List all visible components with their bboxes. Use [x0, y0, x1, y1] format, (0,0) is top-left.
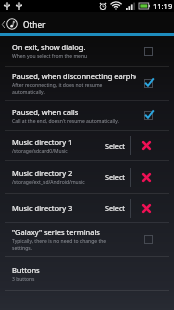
staticText: Select [105, 172, 125, 182]
staticText: Paused, when calls [12, 107, 79, 117]
staticText: automatically. [12, 89, 45, 96]
staticText: Music directory 2 [12, 168, 73, 178]
button[interactable]: Select [100, 131, 130, 160]
staticText: Paused, when disconnecting earphone [12, 71, 136, 81]
button[interactable]: Music directory 1 [0, 131, 100, 160]
staticText: On exit, show dialog. [12, 42, 86, 52]
button[interactable]: Music directory 2 [0, 161, 100, 193]
button[interactable]: Select [100, 161, 130, 193]
staticText: Other [23, 19, 46, 30]
staticText: 11:19 [153, 1, 173, 11]
button[interactable]: "Galaxy" series terminals [0, 223, 174, 256]
button[interactable]: Select [100, 194, 130, 222]
button[interactable]: Paused, when calls [0, 101, 174, 130]
staticText: After reconnecting, it does not resume [12, 82, 103, 89]
button[interactable]: Delete directory [131, 161, 162, 193]
button[interactable]: Music directory 3 [0, 194, 100, 222]
staticText: Typically, there is no need to change th… [12, 238, 107, 245]
staticText: Call at the end, doesn't resume automati… [12, 118, 119, 125]
staticText: settings. [12, 245, 33, 252]
button[interactable]: Delete directory [131, 194, 162, 222]
button[interactable]: Navigate up [0, 15, 18, 33]
staticText: "Galaxy" series terminals [12, 227, 100, 237]
staticText: Select [105, 141, 125, 151]
staticText: /storage/sdcard0/Music [12, 148, 68, 155]
button[interactable]: Paused, when disconnecting earphone [0, 67, 174, 100]
staticText: Music directory 3 [12, 203, 73, 213]
staticText: When you select from the menu [12, 53, 88, 60]
staticText: Buttons [12, 265, 40, 275]
staticText: Select [105, 203, 125, 213]
button[interactable]: Delete directory [131, 131, 162, 160]
button[interactable]: Buttons [0, 257, 174, 290]
button[interactable]: On exit, show dialog. [0, 36, 174, 66]
staticText: 3 buttons [12, 276, 35, 283]
staticText: /storage/ext_sd/Android/music [12, 179, 85, 186]
staticText: Music directory 1 [12, 137, 73, 147]
